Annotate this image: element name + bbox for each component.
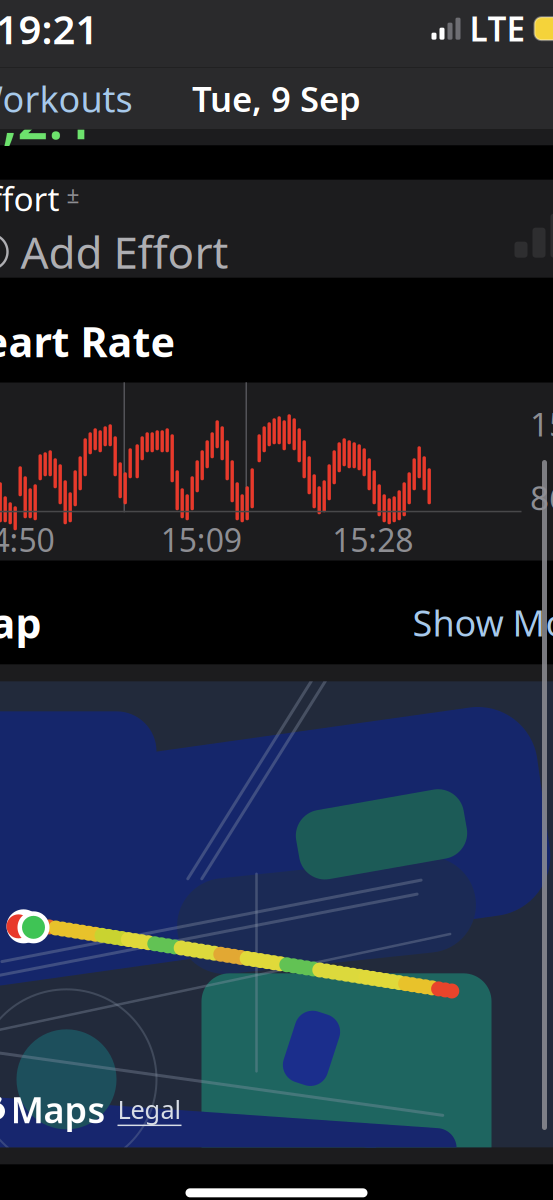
staticText: LTE bbox=[469, 6, 525, 51]
staticText: Show More bbox=[412, 598, 553, 646]
staticText: 155 bbox=[530, 401, 553, 446]
staticText: 19:21 bbox=[0, 2, 98, 55]
button[interactable]: Workouts bbox=[0, 65, 136, 132]
staticText: Effort bbox=[0, 176, 59, 221]
staticText: Map bbox=[0, 595, 41, 650]
button[interactable]: Effort bbox=[0, 180, 553, 278]
staticText: ± bbox=[66, 179, 79, 209]
staticText: Legal bbox=[117, 1092, 181, 1126]
staticText: Maps bbox=[10, 1085, 105, 1133]
staticText: Workouts bbox=[0, 75, 132, 122]
staticText: Add Effort bbox=[20, 223, 228, 281]
staticText: 15:09 bbox=[161, 518, 242, 561]
staticText: 15:28 bbox=[332, 518, 413, 561]
staticText: 1,2.1 bbox=[0, 83, 94, 154]
staticText: 14:50 bbox=[0, 518, 54, 561]
staticText: Heart Rate bbox=[0, 314, 175, 369]
staticText: 86 bbox=[530, 475, 553, 520]
button[interactable]: Show More bbox=[410, 594, 553, 650]
button[interactable]: Legal bbox=[115, 1089, 183, 1129]
staticText: Tue, 9 Sep bbox=[192, 76, 361, 122]
